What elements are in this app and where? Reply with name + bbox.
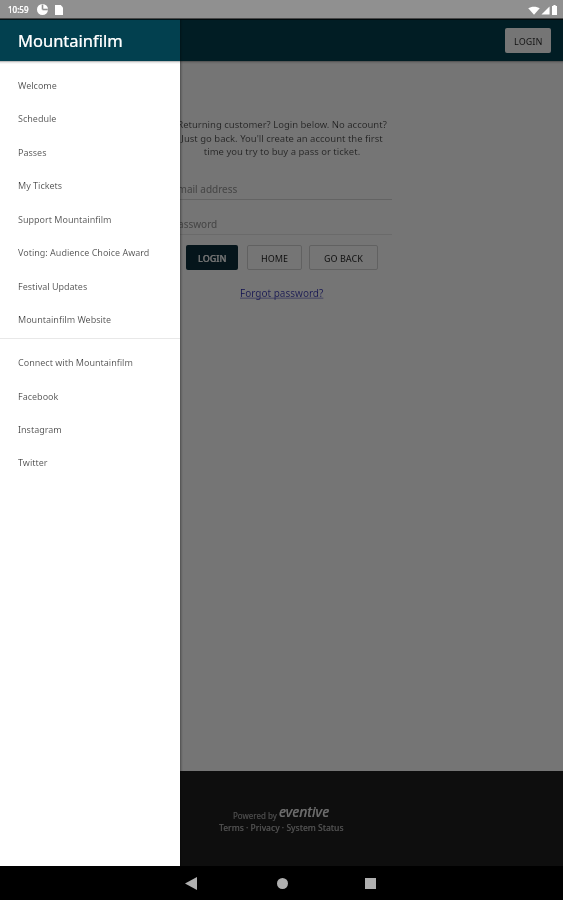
staticText: Mountainfilm bbox=[18, 29, 123, 51]
button[interactable]: Instagram bbox=[0, 412, 180, 446]
button[interactable]: Schedule bbox=[0, 101, 180, 135]
staticText: Voting: Audience Choice Award bbox=[18, 246, 150, 258]
staticText: Forgot password? bbox=[240, 286, 324, 300]
button[interactable]: Twitter bbox=[0, 445, 180, 479]
button[interactable]: Back bbox=[168, 866, 214, 900]
staticText: Powered by bbox=[233, 810, 279, 821]
staticText: Schedule bbox=[18, 112, 57, 124]
button[interactable]: Passes bbox=[0, 135, 180, 169]
staticText: Instagram bbox=[18, 423, 62, 435]
staticText: LOGIN bbox=[198, 252, 227, 264]
button[interactable]: Festival Updates bbox=[0, 269, 180, 303]
staticText: Passes bbox=[18, 146, 47, 158]
staticText: Facebook bbox=[18, 390, 59, 402]
button[interactable]: GO BACK bbox=[309, 245, 378, 270]
staticText: LOGIN bbox=[514, 35, 543, 47]
staticText: Returning customer? Login below. No acco… bbox=[176, 118, 388, 157]
button[interactable]: Voting: Audience Choice Award bbox=[0, 235, 180, 269]
staticText: GO BACK bbox=[324, 252, 363, 264]
staticText: Password bbox=[172, 217, 218, 231]
staticText: eventive bbox=[279, 802, 330, 821]
button[interactable]: Email address bbox=[172, 182, 392, 200]
button[interactable]: Forgot password? bbox=[240, 286, 324, 300]
staticText: Support Mountainfilm bbox=[18, 213, 112, 225]
staticText: Mountainfilm Website bbox=[18, 313, 112, 325]
button[interactable]: Facebook bbox=[0, 379, 180, 413]
button[interactable]: Terms · Privacy · System Status bbox=[219, 822, 344, 834]
staticText: HOME bbox=[261, 252, 289, 264]
staticText: My Tickets bbox=[18, 179, 63, 191]
button[interactable]: My Tickets bbox=[0, 168, 180, 202]
staticText: Twitter bbox=[18, 456, 48, 468]
staticText: Email address bbox=[172, 182, 238, 196]
button[interactable]: Password bbox=[172, 217, 392, 235]
button[interactable]: LOGIN bbox=[505, 28, 551, 53]
staticText: Connect with Mountainfilm bbox=[18, 356, 133, 368]
staticText: Welcome bbox=[18, 79, 57, 91]
staticText: Mountainfilm bbox=[18, 29, 123, 51]
staticText: Terms · Privacy · System Status bbox=[219, 822, 344, 834]
button[interactable]: Support Mountainfilm bbox=[0, 202, 180, 236]
button[interactable]: Welcome bbox=[0, 68, 180, 102]
staticText: Festival Updates bbox=[18, 280, 88, 292]
button[interactable]: LOGIN bbox=[186, 245, 238, 270]
button[interactable]: Connect with Mountainfilm bbox=[0, 345, 180, 379]
button[interactable]: Home bbox=[259, 866, 305, 900]
button[interactable]: HOME bbox=[247, 245, 302, 270]
button[interactable]: Recent apps bbox=[347, 866, 393, 900]
staticText: 10:59 bbox=[8, 4, 29, 15]
button[interactable]: Mountainfilm Website bbox=[0, 302, 180, 336]
